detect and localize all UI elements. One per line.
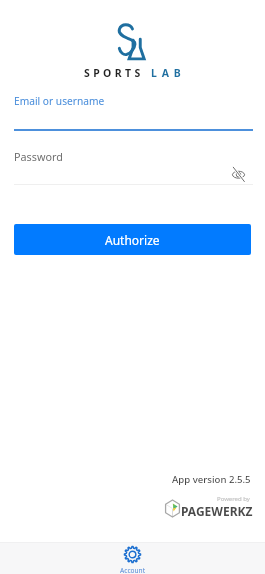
staticText: SPORTS: [84, 66, 144, 80]
staticText: App version 2.5.5: [172, 473, 251, 486]
button[interactable]: Show password: [228, 164, 249, 185]
staticText: Powered by: [217, 495, 250, 503]
button[interactable]: Authorize: [14, 224, 251, 255]
staticText: LAB: [151, 66, 186, 80]
staticText: Password: [14, 149, 63, 164]
staticText: PAGEWERKZ: [181, 503, 253, 519]
staticText: Account: [120, 566, 146, 574]
button[interactable]: Account: [0, 543, 265, 574]
staticText: Email or username: [14, 94, 105, 108]
staticText: Authorize: [105, 232, 160, 248]
